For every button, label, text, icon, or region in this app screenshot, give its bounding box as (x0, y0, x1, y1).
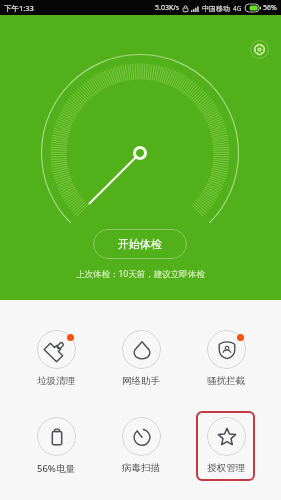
button[interactable] (117, 330, 165, 388)
staticText: 骚扰拦截 (207, 375, 245, 387)
button[interactable] (196, 411, 255, 481)
button[interactable] (32, 330, 80, 388)
button[interactable]: 开始体检 (93, 229, 187, 259)
staticText: 垃圾清理 (37, 375, 75, 387)
staticText: 5.03K/s (155, 3, 180, 13)
button[interactable] (202, 417, 250, 475)
button[interactable] (117, 417, 165, 475)
button[interactable] (202, 330, 250, 388)
button[interactable]: Settings (250, 40, 269, 59)
staticText: 开始体检 (118, 237, 162, 251)
staticText: 下午1:33 (4, 3, 34, 13)
staticText: 上次体检：10天前，建议立即体检 (76, 268, 205, 280)
staticText: 授权管理 (207, 462, 245, 474)
staticText: 56% (263, 3, 277, 13)
button[interactable] (32, 417, 80, 475)
staticText: 56%电量 (37, 462, 75, 474)
staticText: 4G (233, 4, 242, 13)
staticText: 病毒扫描 (122, 462, 160, 474)
staticText: 中国移动 (202, 4, 230, 13)
staticText: 网络助手 (122, 375, 160, 387)
